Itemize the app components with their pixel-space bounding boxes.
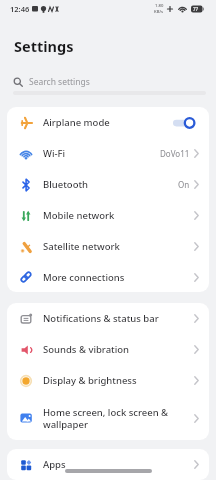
staticText: 1.80 <box>155 3 164 9</box>
button[interactable]: Notifications & status bar <box>7 303 209 334</box>
button[interactable]: Display & brightness <box>7 365 209 396</box>
staticText: Wi-Fi <box>43 147 66 160</box>
staticText: More connections <box>43 271 125 284</box>
button[interactable]: Apps <box>7 449 209 480</box>
button[interactable]: Satellite network <box>7 231 209 262</box>
button[interactable]: Home screen, lock screen & wallpaper <box>7 396 209 440</box>
staticText: Bluetooth <box>43 178 89 191</box>
staticText: 77 <box>193 6 199 12</box>
button[interactable]: Wi-Fi <box>7 138 209 169</box>
staticText: DoVo11 <box>160 148 190 159</box>
staticText: Mobile network <box>43 209 115 222</box>
staticText: Display & brightness <box>43 374 137 387</box>
staticText: Sounds & vibration <box>43 343 130 356</box>
staticText: Apps <box>43 458 66 471</box>
staticText: Airplane mode <box>43 116 110 129</box>
staticText: On <box>178 179 190 190</box>
staticText: 12:46 <box>10 4 30 14</box>
staticText: KB/s <box>154 9 164 15</box>
staticText: Settings <box>14 36 74 56</box>
button[interactable]: Search settings <box>13 74 203 90</box>
staticText: Satellite network <box>43 240 120 253</box>
button[interactable]: Sounds & vibration <box>7 334 209 365</box>
staticText: Search settings <box>29 76 90 88</box>
staticText: Home screen, lock screen & wallpaper <box>43 406 169 431</box>
button[interactable]: Mobile network <box>7 200 209 231</box>
staticText: Notifications & status bar <box>43 312 159 325</box>
button[interactable]: Airplane mode <box>7 107 209 138</box>
button[interactable]: More connections <box>7 262 209 292</box>
button[interactable]: Bluetooth <box>7 169 209 200</box>
